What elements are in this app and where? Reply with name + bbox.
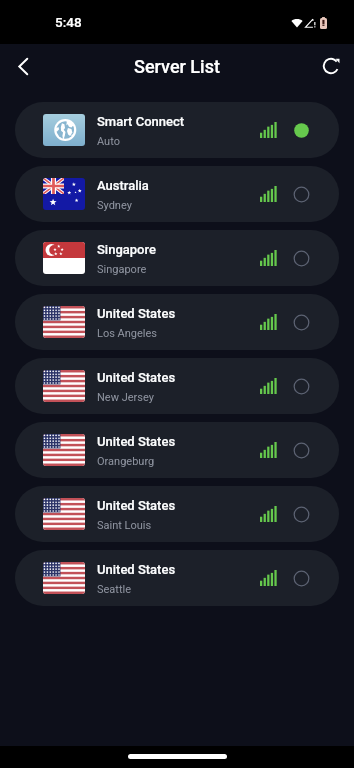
staticText: New Jersey [97, 391, 154, 404]
staticText: Smart Connect [97, 114, 185, 129]
button[interactable]: Refresh [313, 48, 349, 84]
staticText: United States [97, 306, 176, 321]
staticText: United States [97, 562, 176, 577]
button[interactable]: Australia [15, 166, 339, 222]
staticText: Saint Louis [97, 519, 152, 532]
staticText: Sydney [97, 199, 132, 212]
staticText: United States [97, 498, 176, 513]
staticText: Singapore [97, 263, 147, 276]
staticText: Seattle [97, 583, 132, 596]
staticText: Los Angeles [97, 327, 158, 340]
staticText: Auto [97, 135, 120, 148]
button[interactable]: United States [15, 486, 339, 542]
button[interactable]: United States [15, 358, 339, 414]
button[interactable]: United States [15, 294, 339, 350]
staticText: Singapore [97, 242, 156, 257]
staticText: Orangeburg [97, 455, 155, 468]
staticText: 5:48 [55, 14, 82, 30]
button[interactable]: United States [15, 550, 339, 606]
staticText: United States [97, 370, 176, 385]
staticText: United States [97, 434, 176, 449]
button[interactable]: Singapore [15, 230, 339, 286]
button[interactable]: Smart Connect [15, 102, 339, 158]
button[interactable]: Back [5, 48, 41, 84]
staticText: Server List [134, 56, 220, 77]
button[interactable]: United States [15, 422, 339, 478]
staticText: Australia [97, 178, 149, 193]
